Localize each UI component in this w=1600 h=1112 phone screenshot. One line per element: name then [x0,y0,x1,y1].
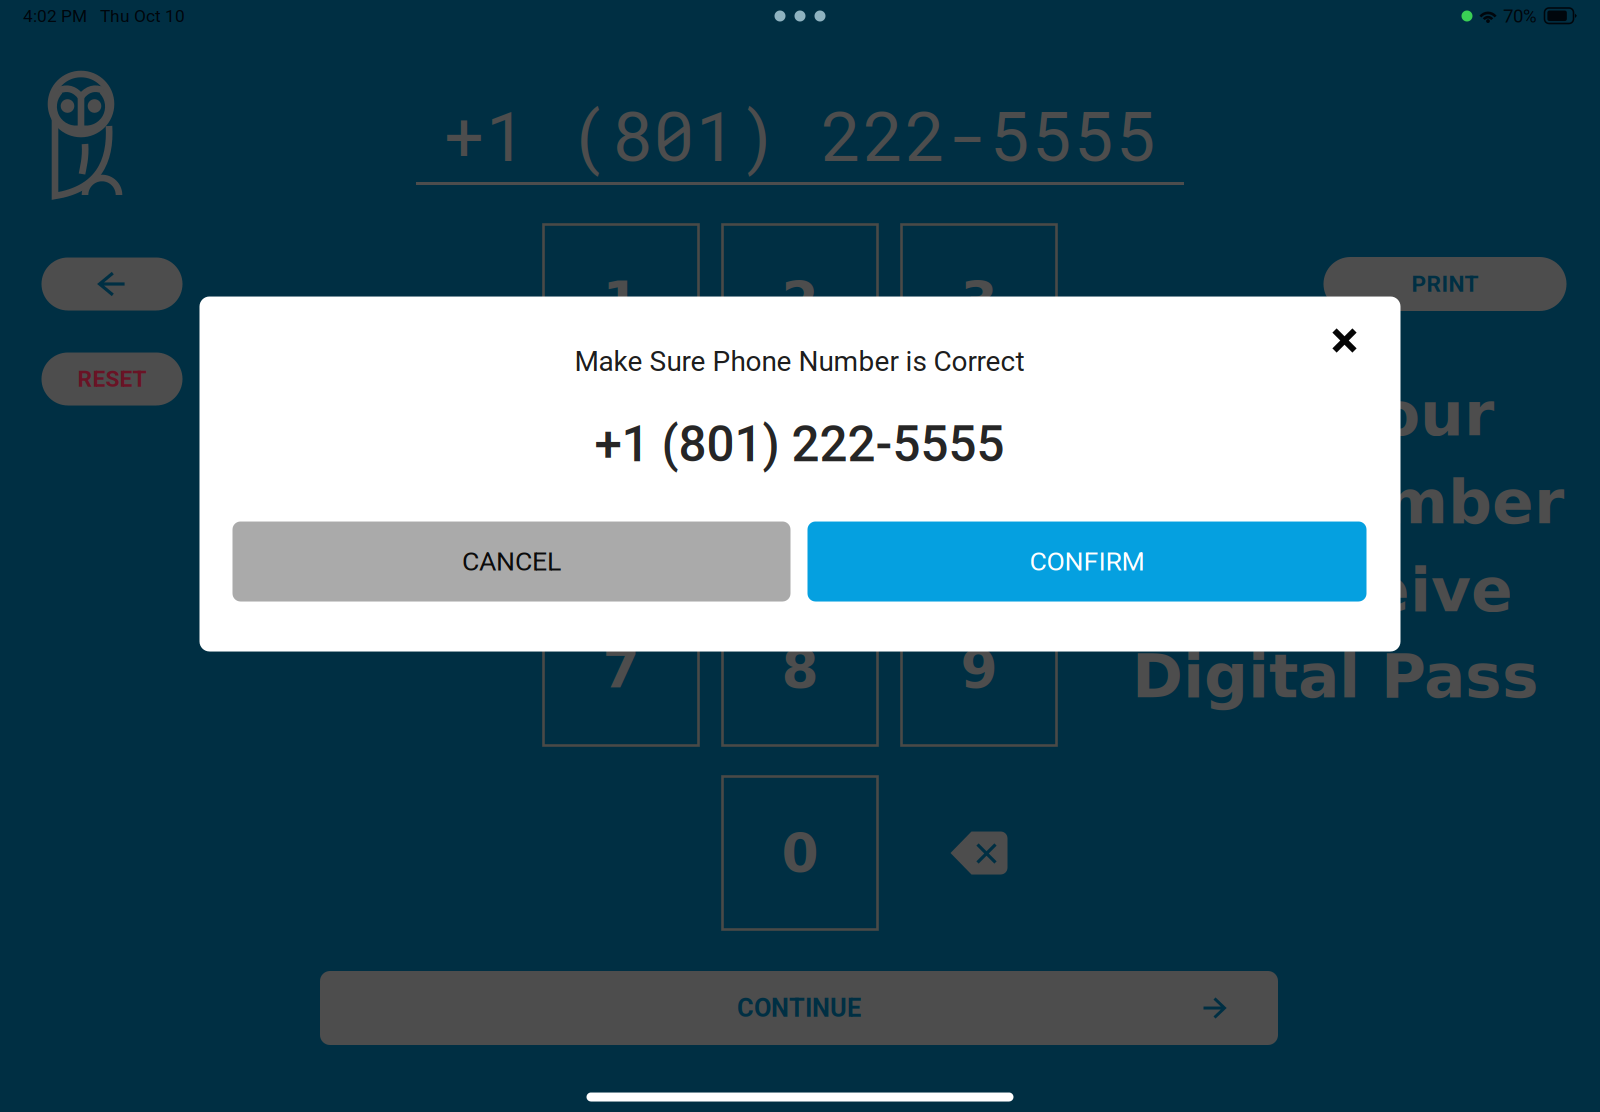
button[interactable]: 7 [543,592,698,745]
staticText: 2 [781,270,818,332]
button[interactable]: 1 [543,224,698,377]
staticText: 4:02 PM [23,6,87,26]
button[interactable]: Close [1312,308,1376,372]
staticText: PRINT [1411,271,1478,297]
staticText: +1 (801) 222-5555 [594,416,1004,473]
staticText: 8 [781,638,818,700]
staticText: Thu Oct 10 [100,6,185,26]
button[interactable]: 2 [722,224,877,377]
staticText: 3 [960,270,997,332]
button[interactable]: 5 [722,408,877,561]
button[interactable]: CONFIRM [807,521,1366,601]
staticText: Make Sure Phone Number is Correct [574,345,1024,378]
button[interactable]: CANCEL [232,521,790,601]
staticText: 9 [960,638,997,700]
staticText: 1 [602,270,639,332]
staticText: Phone Number [1051,466,1564,538]
staticText: 7 [602,638,639,700]
staticText: 0 [781,822,818,884]
staticText: +1 (801) 222-5555 [443,88,1157,180]
staticText: CONTINUE [737,993,861,1023]
button[interactable]: CONTINUE [320,971,1278,1045]
staticText: 5 [781,454,818,516]
button[interactable]: 0 [722,776,877,929]
staticText: 70% [1503,5,1537,27]
button[interactable]: 3 [901,224,1056,377]
button[interactable]: 6 [901,408,1056,561]
button[interactable]: PRINT [1323,257,1566,311]
staticText: RESET [77,366,146,392]
staticText: 6 [960,454,997,516]
staticText: CANCEL [462,546,561,577]
staticText: Digital Pass [1132,640,1539,712]
button[interactable]: RESET [41,352,182,405]
staticText: CONFIRM [1029,546,1144,577]
staticText: 4 [602,454,639,516]
staticText: Enter Your [1131,378,1494,450]
button[interactable]: Delete [901,776,1056,929]
button[interactable]: 8 [722,592,877,745]
button[interactable]: 9 [901,592,1056,745]
staticText: To Receive [1146,554,1513,626]
button[interactable]: 4 [543,408,698,561]
button[interactable]: Back [41,257,182,310]
